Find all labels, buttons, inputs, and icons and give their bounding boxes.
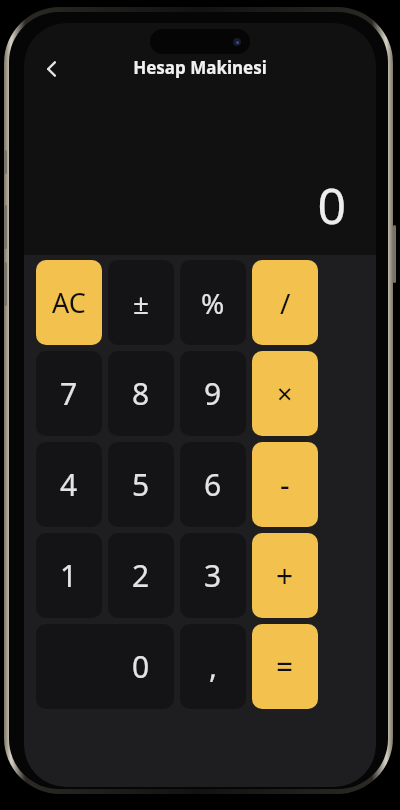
staticText: 2 bbox=[132, 555, 150, 596]
button[interactable]: 1 bbox=[36, 533, 102, 618]
button[interactable]: 5 bbox=[108, 442, 174, 527]
staticText: 0 bbox=[317, 171, 346, 239]
staticText: = bbox=[276, 646, 294, 687]
button[interactable]: + bbox=[252, 533, 318, 618]
button[interactable]: 4 bbox=[36, 442, 102, 527]
button[interactable]: % bbox=[180, 260, 246, 345]
staticText: AC bbox=[52, 284, 86, 321]
button[interactable]: 2 bbox=[108, 533, 174, 618]
staticText: 5 bbox=[132, 464, 150, 505]
staticText: Hesap Makinesi bbox=[133, 56, 267, 79]
button[interactable]: 8 bbox=[108, 351, 174, 436]
button[interactable]: ± bbox=[108, 260, 174, 345]
staticText: 6 bbox=[204, 464, 222, 505]
button[interactable]: , bbox=[180, 624, 246, 709]
staticText: ± bbox=[133, 284, 150, 322]
button[interactable]: - bbox=[252, 442, 318, 527]
staticText: % bbox=[201, 284, 225, 322]
button[interactable]: 6 bbox=[180, 442, 246, 527]
staticText: - bbox=[280, 464, 290, 505]
staticText: / bbox=[280, 284, 291, 322]
staticText: 3 bbox=[204, 555, 222, 596]
button[interactable]: / bbox=[252, 260, 318, 345]
button[interactable]: Back bbox=[30, 47, 74, 91]
staticText: , bbox=[209, 646, 218, 687]
staticText: + bbox=[276, 555, 294, 596]
button[interactable]: = bbox=[252, 624, 318, 709]
button[interactable]: AC bbox=[36, 260, 102, 345]
staticText: 0 bbox=[132, 646, 150, 687]
staticText: 9 bbox=[204, 373, 222, 414]
button[interactable]: 7 bbox=[36, 351, 102, 436]
button[interactable]: 0 bbox=[36, 624, 174, 709]
button[interactable]: 3 bbox=[180, 533, 246, 618]
staticText: 7 bbox=[60, 373, 78, 414]
staticText: × bbox=[277, 375, 293, 412]
button[interactable]: 9 bbox=[180, 351, 246, 436]
button[interactable]: × bbox=[252, 351, 318, 436]
staticText: 1 bbox=[60, 555, 78, 596]
staticText: 8 bbox=[132, 373, 150, 414]
staticText: 4 bbox=[60, 464, 78, 505]
